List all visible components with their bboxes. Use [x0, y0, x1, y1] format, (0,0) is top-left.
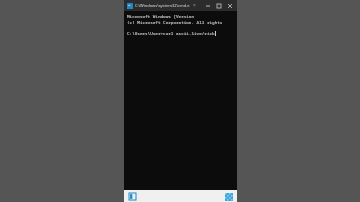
- button[interactable]: Task view: [127, 191, 137, 201]
- staticText: ×: [193, 2, 196, 9]
- button[interactable]: Close: [224, 0, 236, 11]
- button[interactable]: Minimize: [202, 0, 213, 11]
- staticText: Microsoft Windows [Version 10.0.22621.22…: [127, 13, 237, 19]
- button[interactable]: Command Prompt: [223, 191, 234, 202]
- staticText: (c) Microsoft Corporation. All rights re…: [127, 19, 237, 25]
- button[interactable]: Maximize: [213, 0, 224, 11]
- staticText: C:\Windows\system32\cmd.e: [135, 3, 190, 8]
- staticText: C:\Users\User>curl ascii.live/rick: [127, 30, 215, 36]
